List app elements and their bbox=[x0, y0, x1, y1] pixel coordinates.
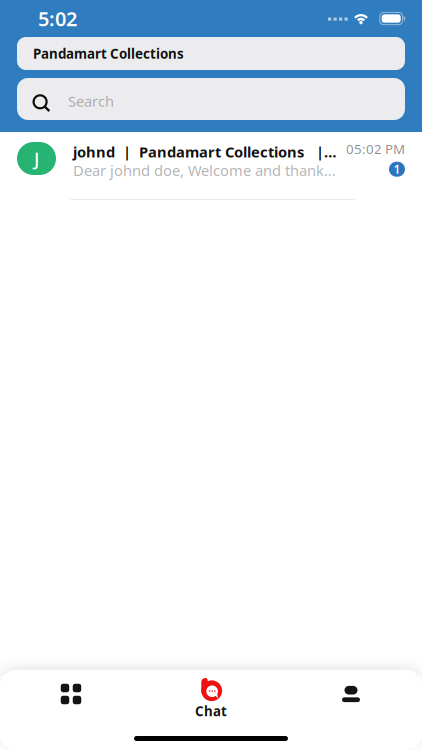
button[interactable]: Chat bbox=[141, 676, 281, 720]
button[interactable]: J bbox=[0, 132, 422, 200]
button[interactable]: Pandamart Collections bbox=[0, 37, 422, 70]
staticText: Dear johnd doe, Welcome and thanks f… bbox=[73, 160, 339, 180]
staticText: 1 bbox=[393, 161, 400, 177]
button[interactable]: Search bbox=[0, 78, 422, 120]
staticText: 5:02 bbox=[38, 5, 77, 32]
staticText: Pandamart Collections bbox=[33, 45, 184, 62]
staticText: Search bbox=[68, 91, 114, 111]
staticText: 05:02 PM bbox=[346, 140, 405, 158]
staticText: johnd | Pandamart Collections | 919… bbox=[73, 142, 339, 161]
button[interactable]: Apps bbox=[1, 676, 141, 720]
staticText: J bbox=[34, 146, 39, 171]
button[interactable]: Account bbox=[281, 676, 421, 720]
staticText: Chat bbox=[195, 702, 227, 720]
